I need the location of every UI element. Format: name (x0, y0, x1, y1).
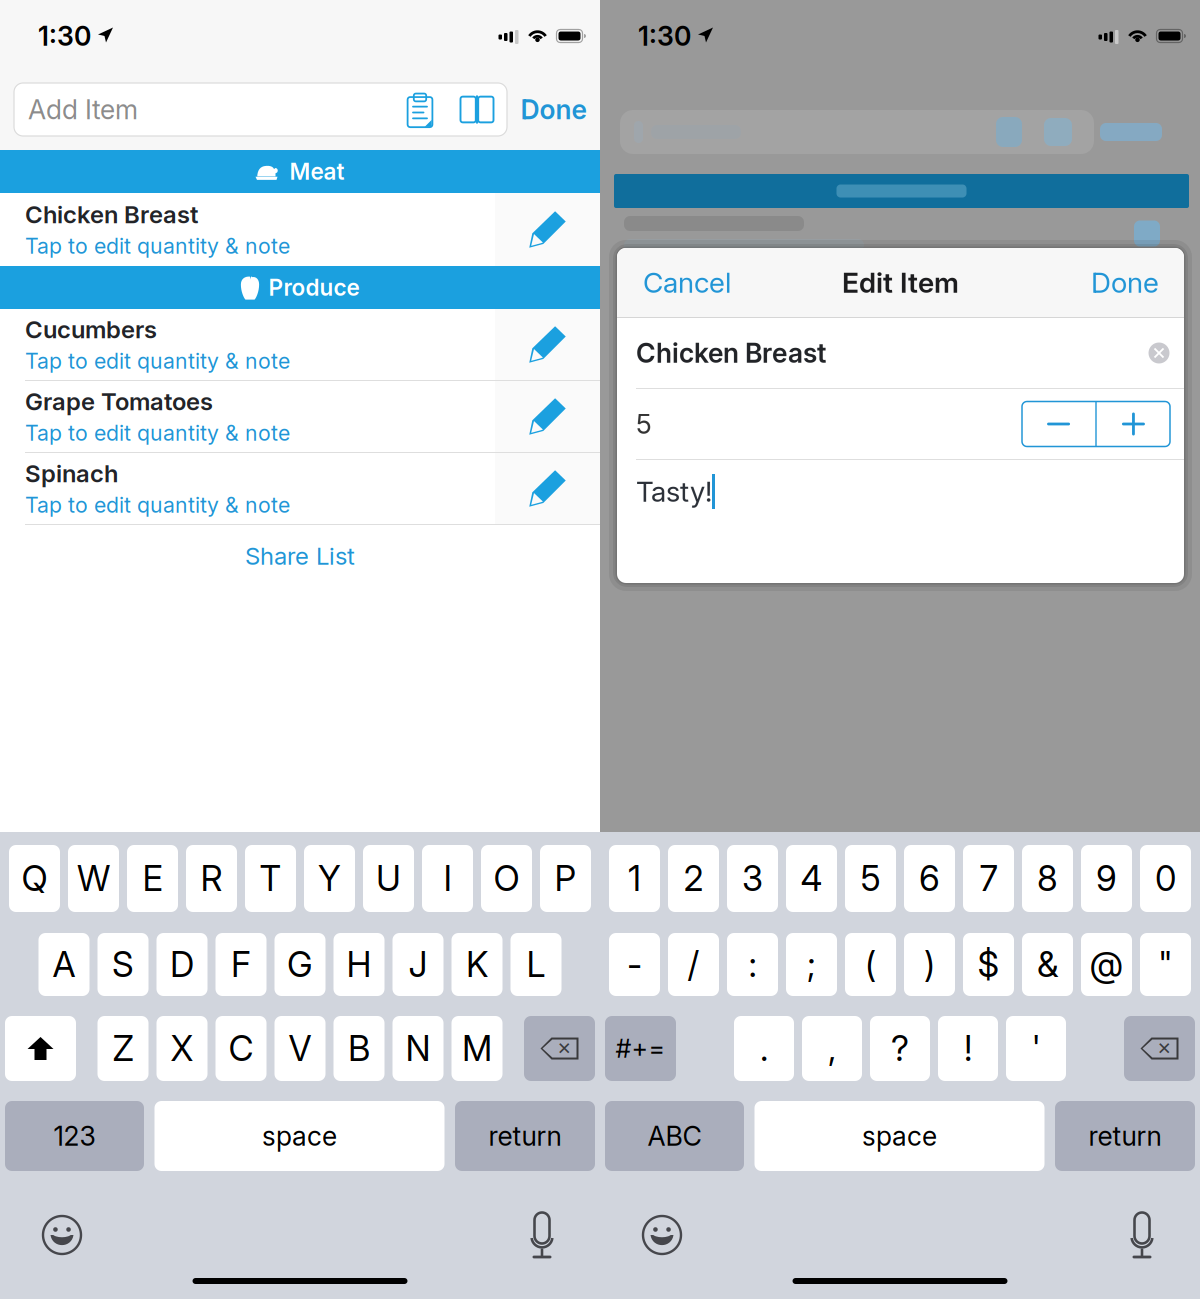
staticText: @ (1089, 943, 1123, 985)
button[interactable]: 1 (609, 845, 660, 912)
staticText: . (760, 1027, 768, 1069)
button[interactable]: ' (1006, 1016, 1066, 1081)
staticText: space (862, 1120, 937, 1152)
button[interactable]: Paste list (393, 83, 447, 136)
staticText: ? (891, 1027, 909, 1069)
button[interactable]: Y (304, 845, 355, 912)
button[interactable]: return (455, 1101, 595, 1171)
staticText: O (493, 857, 519, 899)
button[interactable]: J (392, 933, 443, 996)
button[interactable]: 2 (668, 845, 719, 912)
button[interactable]: B (333, 1016, 384, 1081)
button[interactable]: return (1055, 1101, 1195, 1171)
button[interactable]: Delete (524, 1016, 595, 1081)
button[interactable]: $ (963, 933, 1014, 996)
button[interactable]: Z (97, 1016, 148, 1081)
button[interactable]: 9 (1081, 845, 1132, 912)
button[interactable]: Clear (1139, 333, 1179, 373)
button[interactable]: Edit Spinach (495, 453, 600, 524)
button[interactable]: C (215, 1016, 266, 1081)
button[interactable]: & (1022, 933, 1073, 996)
staticText: U (376, 857, 401, 899)
button[interactable]: Share List (0, 525, 600, 587)
button[interactable]: 8 (1022, 845, 1073, 912)
staticText: Tasty! (636, 475, 712, 508)
button[interactable]: G (274, 933, 325, 996)
button[interactable]: Increase quantity (1097, 401, 1170, 446)
button[interactable]: 6 (904, 845, 955, 912)
staticText: Cucumbers (25, 315, 157, 344)
button[interactable]: 0 (1140, 845, 1191, 912)
button[interactable]: U (363, 845, 414, 912)
button[interactable]: K (451, 933, 502, 996)
button[interactable]: Delete (1124, 1016, 1195, 1081)
button[interactable]: Emoji keyboard (630, 1204, 694, 1266)
button[interactable]: / (668, 933, 719, 996)
button[interactable]: Dictate (514, 1204, 570, 1266)
button[interactable]: Edit Grape Tomatoes (495, 381, 600, 452)
button[interactable]: 4 (786, 845, 837, 912)
button[interactable]: 7 (963, 845, 1014, 912)
button[interactable]: Dictate (1114, 1204, 1170, 1266)
button[interactable]: X (156, 1016, 207, 1081)
button[interactable]: space (754, 1101, 1044, 1171)
button[interactable]: N (392, 1016, 443, 1081)
staticText: Meat (289, 158, 344, 185)
button[interactable]: Emoji keyboard (30, 1204, 94, 1266)
button[interactable]: Done (1066, 248, 1184, 317)
staticText: Chicken Breast (636, 337, 826, 369)
button[interactable]: Edit Chicken Breast (495, 193, 600, 266)
button[interactable]: Decrease quantity (1022, 401, 1095, 446)
button[interactable]: 5 (845, 845, 896, 912)
button[interactable]: ! (938, 1016, 998, 1081)
button[interactable]: P (540, 845, 591, 912)
staticText: 1:30 (38, 20, 91, 52)
button[interactable]: Recipes (447, 83, 507, 136)
button[interactable]: W (68, 845, 119, 912)
button[interactable]: ) (904, 933, 955, 996)
button[interactable]: Done (507, 83, 600, 136)
staticText: C (228, 1027, 253, 1069)
staticText: ! (964, 1027, 972, 1069)
staticText: 1 (628, 857, 641, 899)
staticText: " (1158, 943, 1173, 985)
button[interactable]: 3 (727, 845, 778, 912)
button[interactable]: ABC (605, 1101, 744, 1171)
button[interactable]: T (245, 845, 296, 912)
button[interactable]: R (186, 845, 237, 912)
button[interactable]: S (97, 933, 148, 996)
button[interactable]: , (802, 1016, 862, 1081)
button[interactable]: F (215, 933, 266, 996)
button[interactable]: L (510, 933, 561, 996)
button[interactable]: Edit Cucumbers (495, 309, 600, 380)
button[interactable]: D (156, 933, 207, 996)
staticText: J (408, 943, 427, 985)
button[interactable]: Cancel (617, 248, 757, 317)
button[interactable]: - (609, 933, 660, 996)
button[interactable]: 123 (5, 1101, 144, 1171)
staticText: S (112, 943, 134, 985)
button[interactable]: ? (870, 1016, 930, 1081)
button[interactable]: O (481, 845, 532, 912)
button[interactable]: V (274, 1016, 325, 1081)
button[interactable]: ( (845, 933, 896, 996)
button[interactable]: I (422, 845, 473, 912)
button[interactable]: ; (786, 933, 837, 996)
staticText: H (346, 943, 371, 985)
button[interactable]: space (154, 1101, 444, 1171)
button[interactable]: A (38, 933, 89, 996)
button[interactable]: M (451, 1016, 502, 1081)
button[interactable]: H (333, 933, 384, 996)
button[interactable]: #+= (605, 1016, 676, 1081)
button[interactable]: : (727, 933, 778, 996)
button[interactable]: Shift (5, 1016, 76, 1081)
button[interactable]: Q (9, 845, 60, 912)
staticText: Spinach (25, 459, 118, 488)
button[interactable]: E (127, 845, 178, 912)
button[interactable]: " (1140, 933, 1191, 996)
staticText: , (828, 1027, 836, 1069)
button[interactable]: @ (1081, 933, 1132, 996)
staticText: & (1037, 943, 1058, 985)
button[interactable]: . (734, 1016, 794, 1081)
staticText: R (200, 857, 222, 899)
